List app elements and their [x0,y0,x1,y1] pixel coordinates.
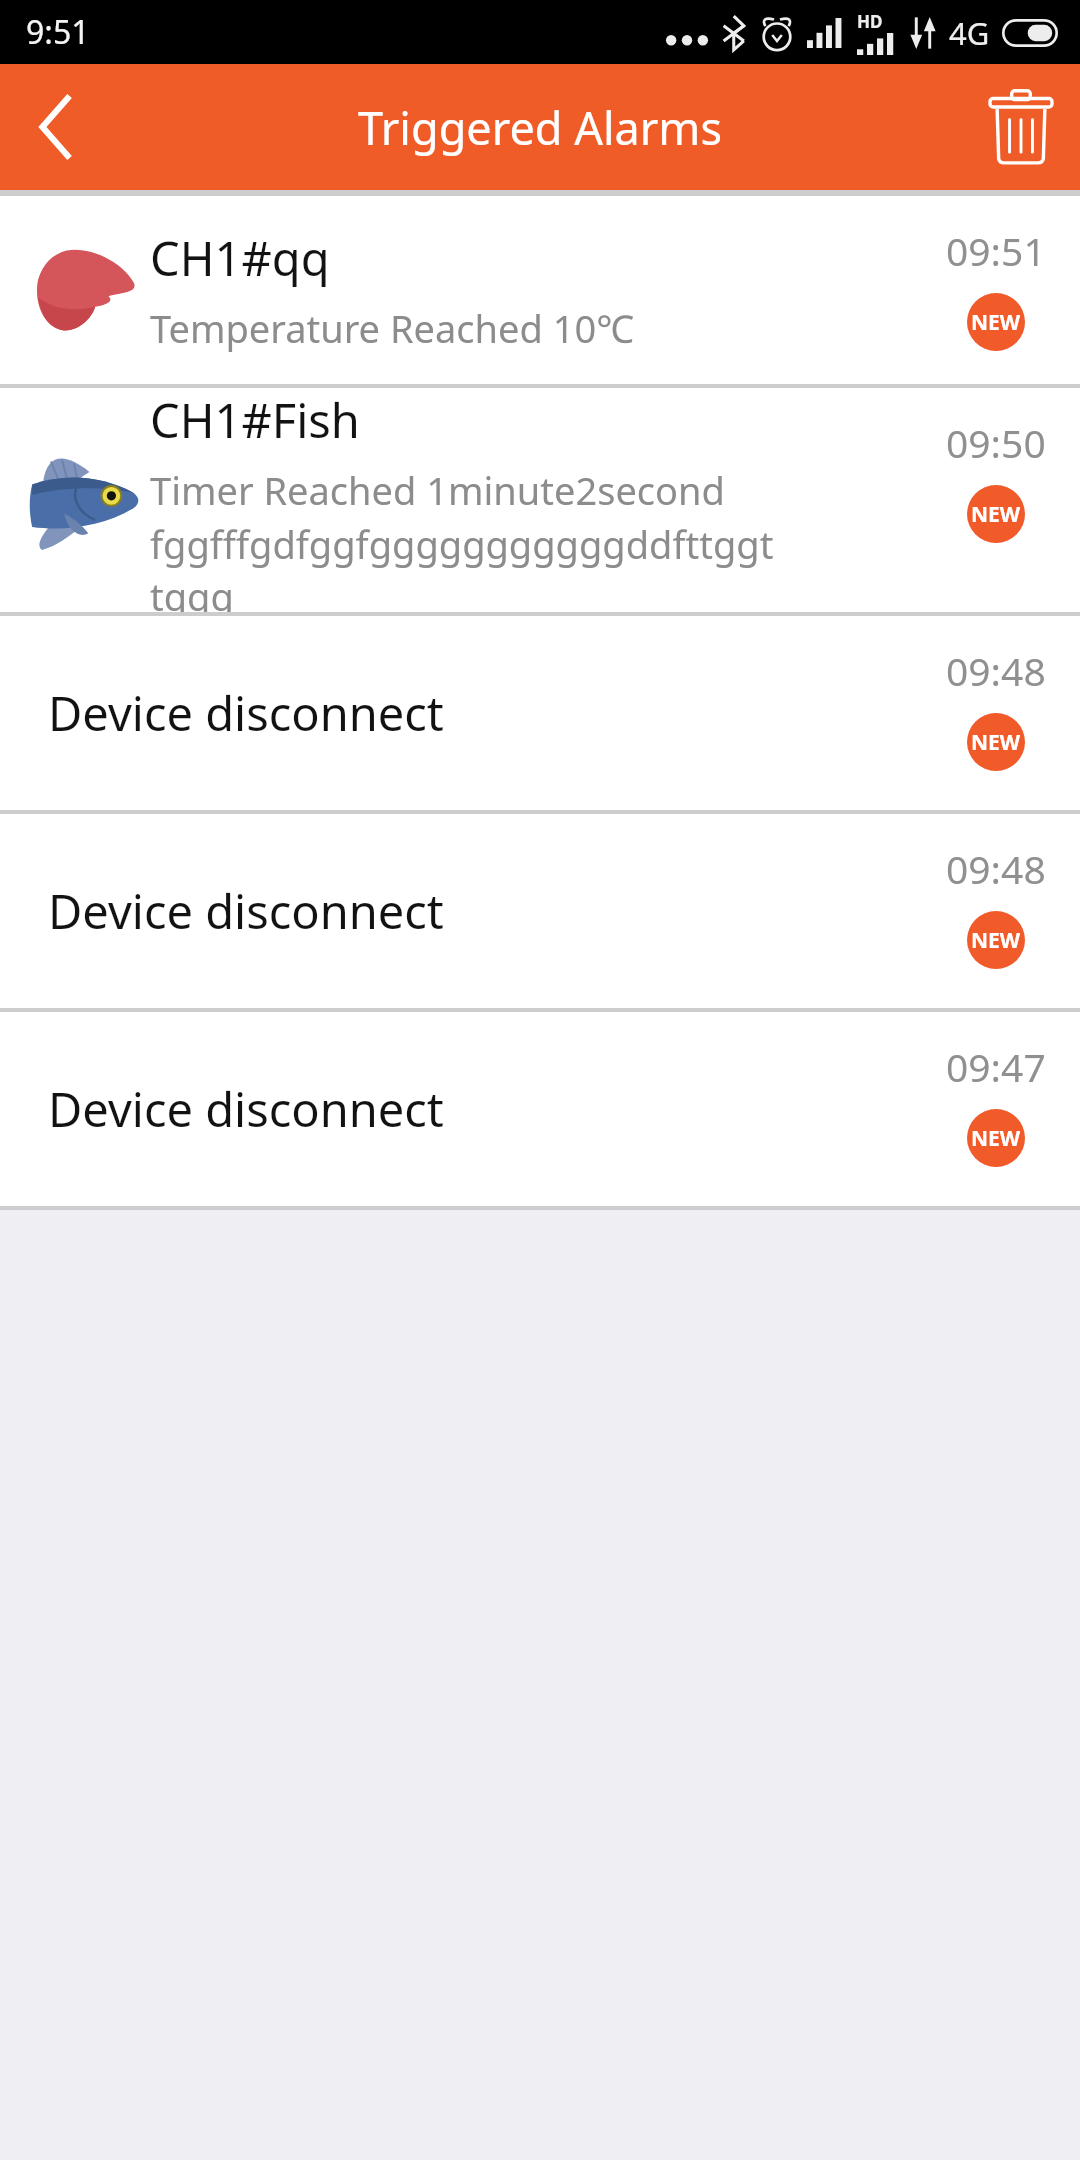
staticText: HD [857,10,883,33]
staticText: Temperature Reached 10℃ [150,302,635,354]
staticText: 9:51 [26,10,90,54]
staticText: 09:47 [946,1040,1046,1093]
staticText: 09:48 [946,644,1046,697]
button[interactable]: Back [0,71,112,183]
staticText: Device disconnect [48,1077,444,1141]
staticText: 4G [949,12,990,54]
staticText: 09:51 [946,224,1046,277]
staticText: NEW [971,728,1021,757]
staticText: Timer Reached 1minute2second [150,464,725,516]
button[interactable]: Device disconnect [0,1012,1080,1206]
staticText: Device disconnect [48,879,444,943]
staticText: 09:48 [946,842,1046,895]
staticText: Triggered Alarms [358,97,722,158]
button[interactable]: CH1#qq [0,196,1080,384]
button[interactable]: Device disconnect [0,814,1080,1008]
staticText: NEW [971,308,1021,337]
button[interactable]: Device disconnect [0,616,1080,810]
staticText: Device disconnect [48,681,444,745]
staticText: CH1#qq [150,226,330,290]
staticText: CH1#Fish [150,388,360,452]
staticText: 09:50 [946,416,1046,469]
staticText: NEW [971,500,1021,529]
button[interactable]: CH1#Fish [0,388,1080,612]
staticText: NEW [971,926,1021,955]
button[interactable]: Delete all alarms [962,68,1080,186]
staticText: fggfffgdfggfgggggggggggddfttggttggg [150,518,780,612]
staticText: NEW [971,1124,1021,1153]
